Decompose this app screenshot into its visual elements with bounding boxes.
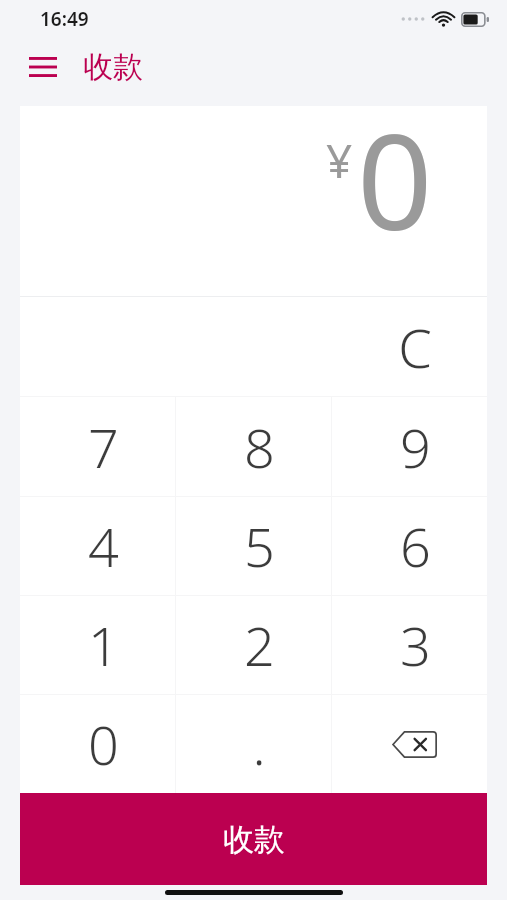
- staticText: 0: [88, 707, 119, 781]
- button[interactable]: 9: [331, 397, 487, 496]
- staticText: 4: [88, 509, 119, 583]
- button[interactable]: .: [175, 695, 331, 793]
- button[interactable]: 1: [20, 596, 175, 694]
- staticText: ¥: [326, 129, 353, 192]
- staticText: 9: [400, 410, 431, 484]
- staticText: 7: [88, 410, 119, 484]
- button[interactable]: 0: [20, 695, 175, 793]
- button[interactable]: 5: [175, 497, 331, 595]
- staticText: 8: [244, 410, 275, 484]
- staticText: 3: [400, 608, 431, 682]
- button[interactable]: C: [331, 297, 487, 396]
- button[interactable]: 6: [331, 497, 487, 595]
- button[interactable]: 8: [175, 397, 331, 496]
- staticText: 收款: [83, 48, 143, 86]
- button[interactable]: 收款: [20, 793, 487, 885]
- button[interactable]: 3: [331, 596, 487, 694]
- staticText: 2: [244, 608, 275, 682]
- button[interactable]: 4: [20, 497, 175, 595]
- staticText: 1: [88, 608, 119, 682]
- staticText: 收款: [223, 820, 285, 859]
- staticText: C: [398, 310, 432, 384]
- button[interactable]: 2: [175, 596, 331, 694]
- button[interactable]: 7: [20, 397, 175, 496]
- staticText: 5: [244, 509, 275, 583]
- staticText: 6: [400, 509, 431, 583]
- button[interactable]: Menu: [20, 44, 66, 90]
- staticText: .: [252, 707, 266, 781]
- staticText: 16:49: [40, 6, 89, 32]
- button[interactable]: Backspace: [331, 695, 487, 793]
- staticText: 0: [357, 89, 433, 269]
